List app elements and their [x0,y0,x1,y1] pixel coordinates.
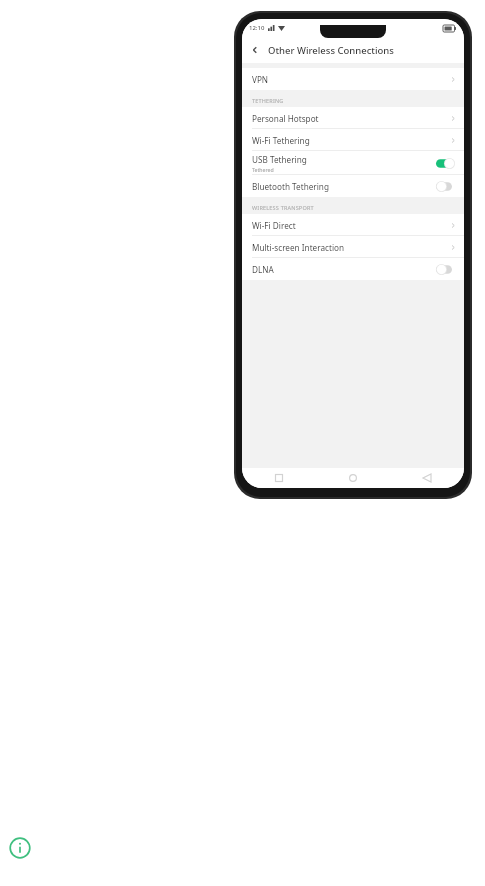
staticText: Other Wireless Connections [268,44,394,57]
button[interactable]: Information [9,837,31,859]
staticText: Tethered [252,166,274,173]
button[interactable]: Recents [242,468,316,488]
button[interactable]: Home [316,468,390,488]
staticText: Multi-screen Interaction [252,242,345,253]
button[interactable]: DLNA [242,258,464,280]
staticText: Wi-Fi Direct [252,220,296,231]
staticText: WIRELESS TRANSPORT [252,204,314,211]
button[interactable]: Bluetooth Tethering [242,175,464,197]
button[interactable]: Personal Hotspot [242,107,464,129]
staticText: 12:10 [249,24,265,32]
button[interactable]: Multi-screen Interaction [242,236,464,258]
button[interactable]: Wi-Fi Tethering [242,129,464,151]
button[interactable]: VPN [242,68,464,90]
staticText: Bluetooth Tethering [252,181,329,192]
staticText: TETHERING [252,97,284,104]
staticText: USB Tethering [252,154,307,165]
staticText: Wi-Fi Tethering [252,135,310,146]
staticText: DLNA [252,264,274,275]
button[interactable]: Wi-Fi Direct [242,214,464,236]
button[interactable]: USB Tethering [242,151,464,175]
staticText: VPN [252,74,269,85]
staticText: Personal Hotspot [252,113,319,124]
button[interactable]: Back [242,37,268,63]
button[interactable]: Back [390,468,464,488]
